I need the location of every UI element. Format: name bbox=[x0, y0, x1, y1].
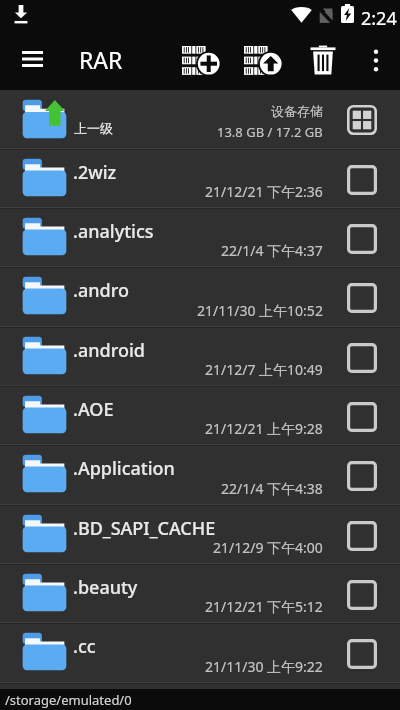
staticText: .Application bbox=[73, 456, 175, 481]
button[interactable]: .android bbox=[0, 328, 400, 387]
staticText: .AOE bbox=[73, 397, 114, 422]
button[interactable]: .Application bbox=[0, 446, 400, 506]
button[interactable]: .cc bbox=[0, 624, 400, 684]
staticText: 21/12/7 上午10:49 bbox=[205, 360, 323, 379]
other: Download bbox=[14, 5, 28, 24]
button[interactable]: .analytics bbox=[0, 209, 400, 268]
staticText: 21/11/30 上午9:22 bbox=[205, 657, 323, 676]
button[interactable]: Select .beauty bbox=[324, 565, 400, 624]
staticText: RAR bbox=[79, 44, 123, 75]
button[interactable]: Select .2wiz bbox=[324, 150, 400, 209]
button[interactable]: Select .AOE bbox=[324, 387, 400, 446]
staticText: .andro bbox=[73, 278, 129, 303]
button[interactable]: 上一级 bbox=[0, 90, 400, 150]
staticText: .android bbox=[73, 338, 145, 363]
button[interactable]: Delete bbox=[300, 30, 346, 90]
button[interactable]: Extract archive bbox=[240, 30, 286, 90]
button[interactable]: .BD_SAPI_CACHE bbox=[0, 506, 400, 565]
staticText: .analytics bbox=[73, 219, 154, 244]
button[interactable]: .beauty bbox=[0, 565, 400, 624]
staticText: 22/1/4 下午4:38 bbox=[221, 479, 323, 498]
button[interactable]: More options bbox=[354, 30, 398, 90]
button[interactable]: Grid view bbox=[324, 90, 400, 150]
staticText: .2wiz bbox=[73, 160, 117, 185]
button[interactable]: Select .analytics bbox=[324, 209, 400, 268]
staticText: 21/12/21 下午5:12 bbox=[205, 597, 323, 616]
button[interactable]: .AOE bbox=[0, 387, 400, 446]
staticText: 13.8 GB / 17.2 GB bbox=[217, 123, 323, 141]
staticText: .beauty bbox=[73, 575, 138, 600]
button[interactable]: .2wiz bbox=[0, 150, 400, 209]
button[interactable]: Select .android bbox=[324, 328, 400, 387]
button[interactable]: Menu bbox=[11, 29, 53, 89]
staticText: 21/11/30 上午10:52 bbox=[197, 301, 323, 320]
staticText: 上一级 bbox=[74, 120, 113, 136]
staticText: 21/12/21 下午2:36 bbox=[205, 182, 323, 201]
button[interactable]: Add to archive bbox=[178, 30, 224, 90]
staticText: 2:24 bbox=[361, 6, 397, 31]
staticText: /storage/emulated/0 bbox=[5, 691, 132, 709]
button[interactable]: Select .andro bbox=[324, 268, 400, 328]
button[interactable]: Select .BD_SAPI_CACHE bbox=[324, 506, 400, 565]
staticText: .BD_SAPI_CACHE bbox=[73, 516, 216, 541]
button[interactable]: Select .cc bbox=[324, 624, 400, 684]
staticText: 22/1/4 下午4:37 bbox=[221, 241, 323, 260]
button[interactable]: .andro bbox=[0, 268, 400, 328]
button[interactable]: Select .Application bbox=[324, 446, 400, 506]
staticText: 21/12/21 上午9:28 bbox=[205, 419, 323, 438]
staticText: 21/12/9 下午4:00 bbox=[213, 538, 323, 557]
staticText: 设备存储 bbox=[271, 103, 323, 119]
staticText: .cc bbox=[73, 634, 96, 659]
